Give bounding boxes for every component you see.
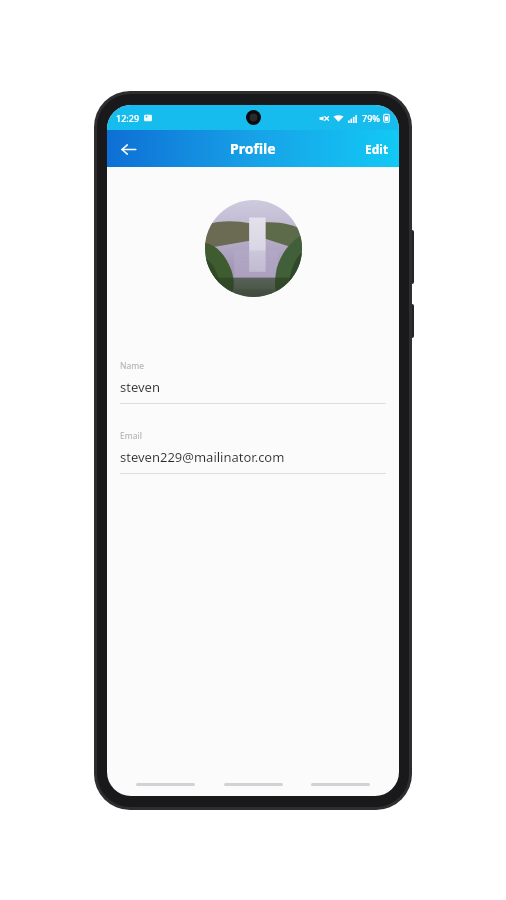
button[interactable]: Email: [107, 430, 399, 474]
staticText: steven229@mailinator.com: [120, 448, 285, 466]
button[interactable]: Name: [107, 360, 399, 404]
button[interactable]: Back: [112, 133, 144, 165]
staticText: Name: [120, 360, 144, 372]
button[interactable]: Profile photo: [205, 200, 302, 297]
staticText: Edit: [365, 141, 389, 157]
staticText: Profile: [230, 139, 276, 158]
staticText: 79%: [362, 112, 380, 124]
staticText: steven: [120, 378, 160, 396]
staticText: 12:29: [116, 112, 140, 124]
staticText: Email: [120, 430, 142, 442]
button[interactable]: Edit: [355, 135, 399, 163]
